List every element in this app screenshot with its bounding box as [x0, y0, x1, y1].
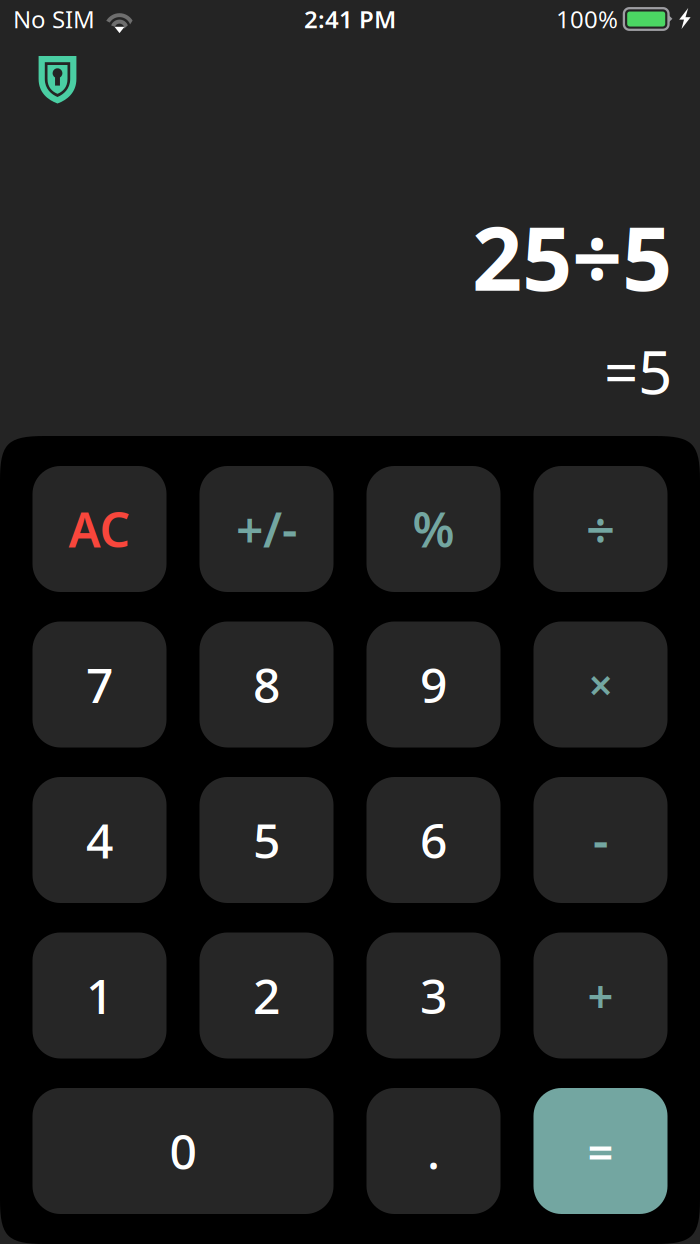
- button[interactable]: Privacy: [38, 54, 79, 106]
- button[interactable]: %: [366, 466, 500, 592]
- button[interactable]: 3: [366, 932, 500, 1058]
- staticText: 5: [253, 808, 280, 872]
- staticText: +/-: [236, 497, 297, 561]
- button[interactable]: +: [533, 932, 667, 1058]
- button[interactable]: 1: [32, 932, 166, 1058]
- button[interactable]: .: [366, 1088, 500, 1214]
- staticText: 2:41 PM: [304, 3, 396, 35]
- button[interactable]: 0: [32, 1088, 333, 1214]
- staticText: 100%: [556, 3, 618, 35]
- staticText: 4: [86, 808, 113, 872]
- staticText: %: [412, 497, 454, 561]
- button[interactable]: 8: [199, 621, 333, 747]
- staticText: 3: [420, 964, 447, 1027]
- staticText: No SIM: [13, 3, 95, 35]
- staticText: =: [587, 1121, 613, 1181]
- staticText: .: [427, 1119, 440, 1183]
- staticText: +: [587, 965, 613, 1026]
- button[interactable]: -: [533, 777, 667, 903]
- button[interactable]: 6: [366, 777, 500, 903]
- button[interactable]: 2: [199, 932, 333, 1058]
- staticText: 25÷5: [472, 198, 672, 315]
- staticText: ×: [588, 656, 612, 713]
- staticText: AC: [68, 497, 130, 561]
- button[interactable]: 7: [32, 621, 166, 747]
- button[interactable]: ÷: [533, 466, 667, 592]
- button[interactable]: AC: [32, 466, 166, 592]
- staticText: =5: [604, 331, 672, 411]
- button[interactable]: =: [533, 1088, 667, 1214]
- staticText: 2: [253, 964, 280, 1027]
- button[interactable]: 9: [366, 621, 500, 747]
- staticText: 0: [169, 1119, 196, 1183]
- button[interactable]: +/-: [199, 466, 333, 592]
- button[interactable]: ×: [533, 621, 667, 747]
- button[interactable]: 5: [199, 777, 333, 903]
- staticText: 7: [86, 653, 113, 716]
- staticText: -: [593, 808, 608, 872]
- staticText: 8: [253, 653, 280, 716]
- staticText: ÷: [586, 495, 615, 563]
- staticText: 6: [420, 808, 447, 872]
- button[interactable]: 4: [32, 777, 166, 903]
- staticText: 9: [420, 653, 447, 716]
- staticText: 1: [86, 964, 113, 1027]
